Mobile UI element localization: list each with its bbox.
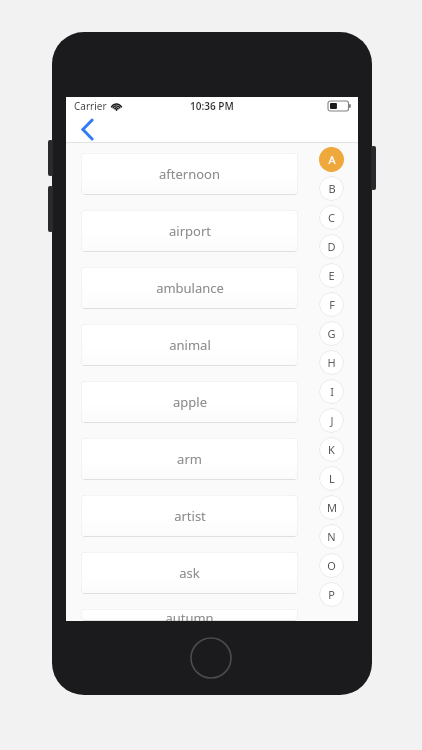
button[interactable]: C xyxy=(319,205,344,230)
button[interactable]: B xyxy=(319,176,344,201)
staticText: A xyxy=(328,152,336,167)
staticText: ask xyxy=(179,564,200,582)
staticText: M xyxy=(327,500,337,515)
staticText: K xyxy=(328,442,335,457)
staticText: D xyxy=(327,239,336,254)
staticText: O xyxy=(327,558,336,573)
staticText: autumn xyxy=(165,609,214,621)
button[interactable]: ask xyxy=(81,552,298,594)
button[interactable]: P xyxy=(319,582,344,607)
button[interactable]: F xyxy=(319,292,344,317)
staticText: arm xyxy=(177,450,202,468)
button[interactable]: animal xyxy=(81,324,298,366)
staticText: H xyxy=(327,355,336,370)
staticText: F xyxy=(329,297,335,312)
staticText: B xyxy=(328,181,336,196)
staticText: I xyxy=(330,384,334,399)
button[interactable]: ambulance xyxy=(81,267,298,309)
button[interactable]: N xyxy=(319,524,344,549)
staticText: animal xyxy=(169,336,211,354)
staticText: airport xyxy=(169,222,211,240)
button[interactable]: H xyxy=(319,350,344,375)
staticText: G xyxy=(327,326,336,341)
button[interactable]: arm xyxy=(81,438,298,480)
button[interactable]: I xyxy=(319,379,344,404)
staticText: N xyxy=(327,529,336,544)
staticText: J xyxy=(330,413,334,428)
staticText: afternoon xyxy=(159,165,220,183)
staticText: P xyxy=(328,587,335,602)
button[interactable]: Back xyxy=(70,115,104,143)
staticText: Carrier xyxy=(74,99,107,113)
button[interactable]: E xyxy=(319,263,344,288)
button[interactable]: L xyxy=(319,466,344,491)
button[interactable]: afternoon xyxy=(81,153,298,195)
button[interactable]: airport xyxy=(81,210,298,252)
button[interactable]: autumn xyxy=(81,609,298,621)
button[interactable]: apple xyxy=(81,381,298,423)
button[interactable]: artist xyxy=(81,495,298,537)
button[interactable]: K xyxy=(319,437,344,462)
button[interactable]: J xyxy=(319,408,344,433)
button[interactable]: D xyxy=(319,234,344,259)
button[interactable]: G xyxy=(319,321,344,346)
staticText: 10:36 PM xyxy=(190,99,234,113)
staticText: ambulance xyxy=(156,279,224,297)
staticText: C xyxy=(328,210,335,225)
button[interactable]: M xyxy=(319,495,344,520)
staticText: L xyxy=(329,471,335,486)
staticText: apple xyxy=(173,393,207,411)
staticText: E xyxy=(328,268,335,283)
button[interactable]: A xyxy=(319,147,344,172)
staticText: artist xyxy=(174,507,206,525)
button[interactable]: O xyxy=(319,553,344,578)
